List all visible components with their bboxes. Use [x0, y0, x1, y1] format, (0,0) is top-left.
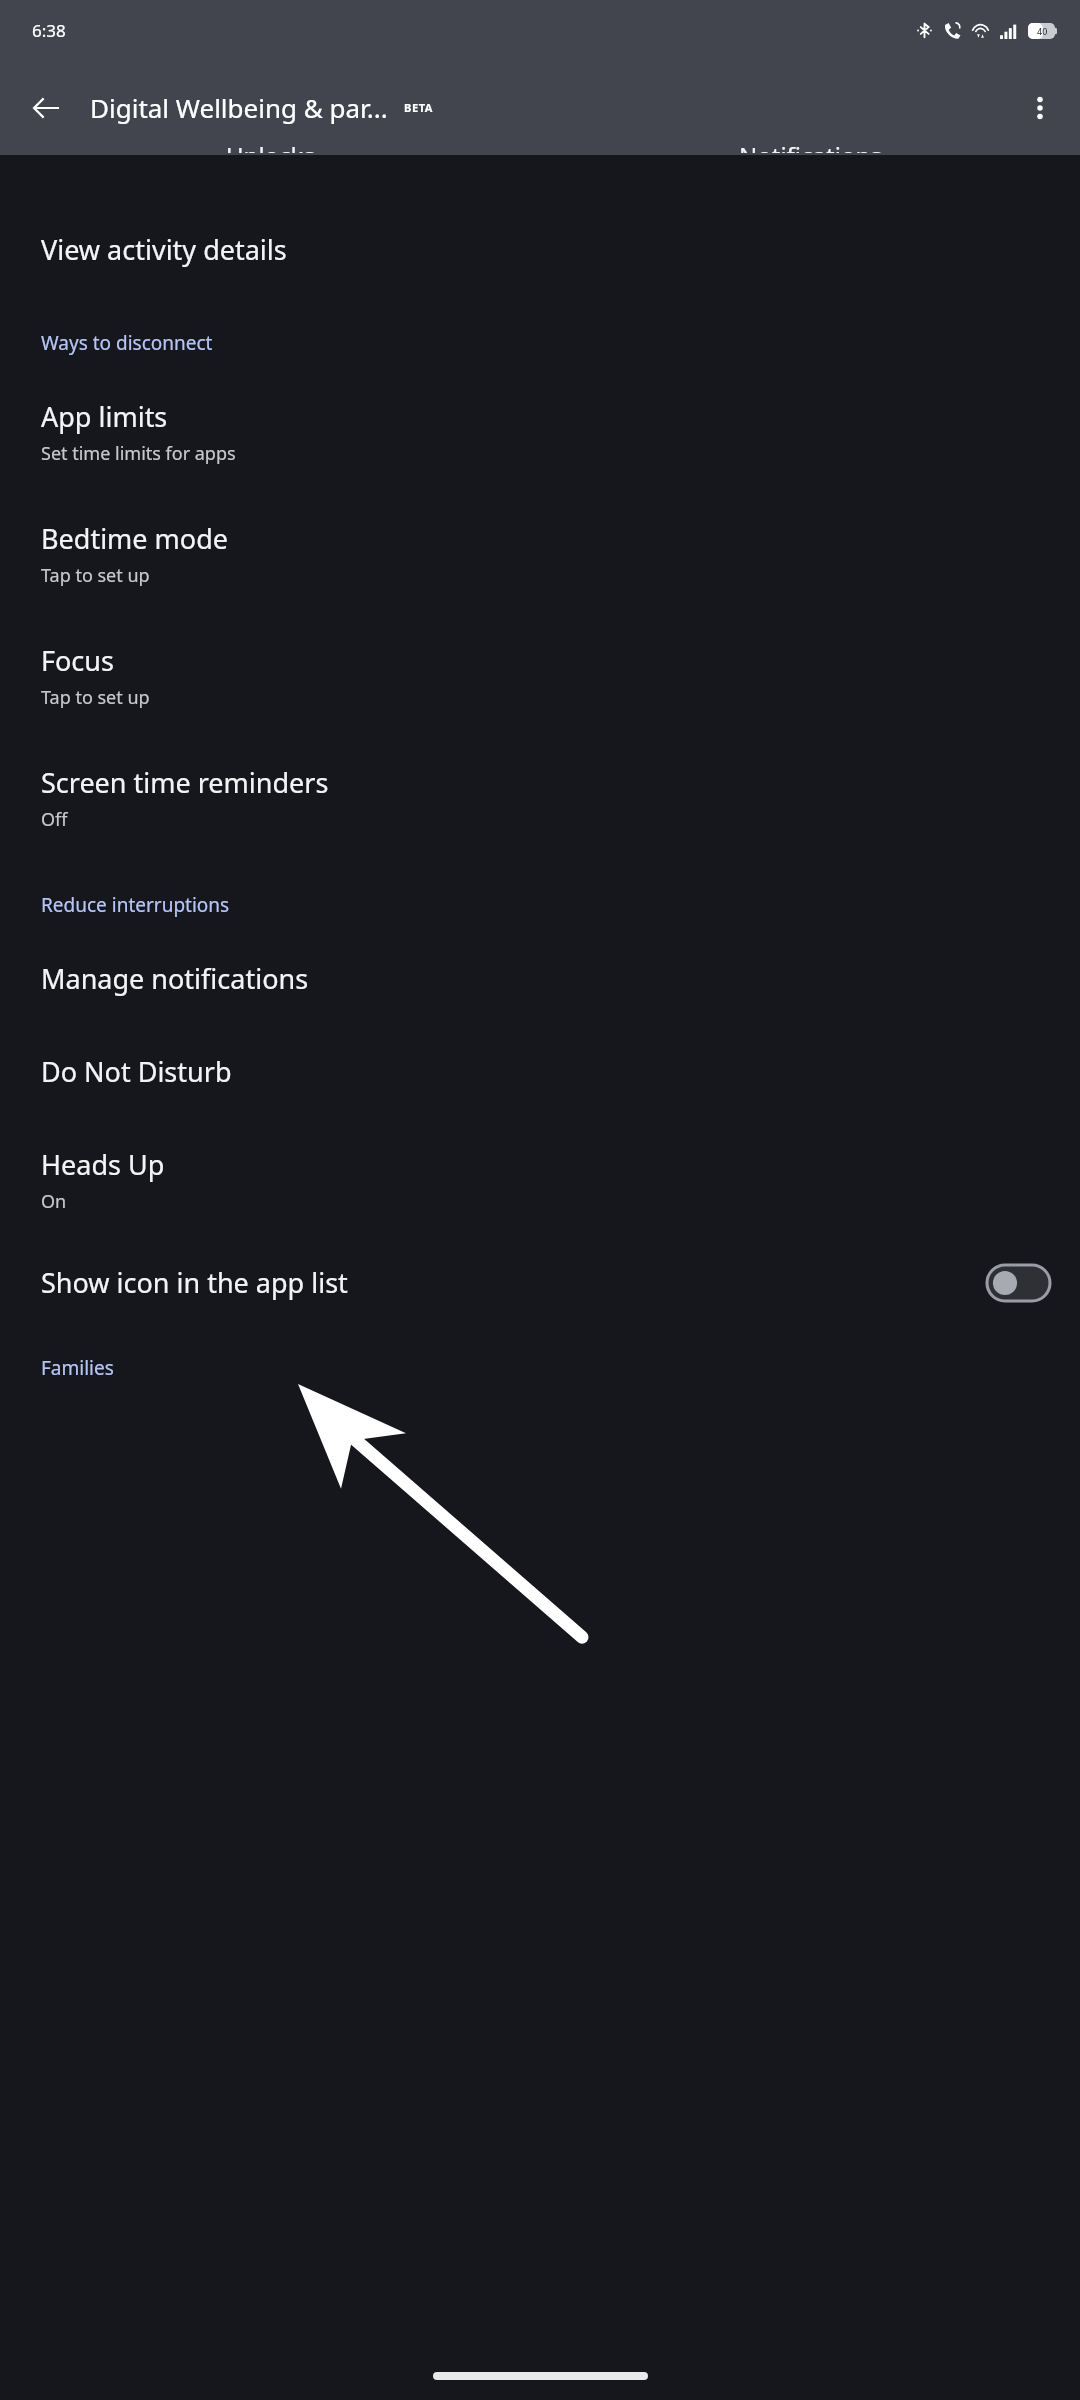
staticText: Focus	[41, 642, 114, 679]
button[interactable]: Back	[18, 80, 74, 136]
button[interactable]: Manage notifications	[0, 918, 1080, 997]
staticText: Bedtime mode	[41, 520, 229, 557]
staticText: Tap to set up	[41, 685, 150, 710]
button[interactable]: More options	[1012, 80, 1068, 136]
staticText: Screen time reminders	[41, 764, 329, 801]
staticText: Digital Wellbeing & par...	[90, 90, 388, 125]
staticText: BETA	[404, 100, 434, 115]
staticText: Do Not Disturb	[41, 1053, 232, 1090]
staticText: View activity details	[41, 231, 287, 268]
staticText: Ways to disconnect	[41, 330, 213, 356]
button[interactable]: App limits	[0, 356, 1080, 466]
staticText: Unlocks	[226, 139, 315, 153]
staticText: 6:38	[32, 19, 66, 42]
staticText: Families	[41, 1355, 114, 1381]
staticText: Set time limits for apps	[41, 441, 236, 466]
staticText: Show icon in the app list	[41, 1264, 987, 1301]
button[interactable]: Show icon in the app list	[0, 1214, 1080, 1301]
button[interactable]: Heads Up	[0, 1090, 1080, 1214]
staticText: Notifications	[739, 139, 882, 153]
staticText: Off	[41, 807, 68, 832]
staticText: App limits	[41, 398, 168, 435]
staticText: 40	[1037, 25, 1048, 37]
staticText: On	[41, 1189, 67, 1214]
button[interactable]: Focus	[0, 588, 1080, 710]
staticText: Manage notifications	[41, 960, 309, 997]
staticText: Heads Up	[41, 1146, 165, 1183]
button[interactable]: Screen time reminders	[0, 710, 1080, 832]
button[interactable]: Do Not Disturb	[0, 997, 1080, 1090]
button[interactable]: View activity details	[0, 169, 1080, 268]
staticText: Tap to set up	[41, 563, 150, 588]
button[interactable]: Bedtime mode	[0, 466, 1080, 588]
staticText: Reduce interruptions	[41, 892, 230, 918]
